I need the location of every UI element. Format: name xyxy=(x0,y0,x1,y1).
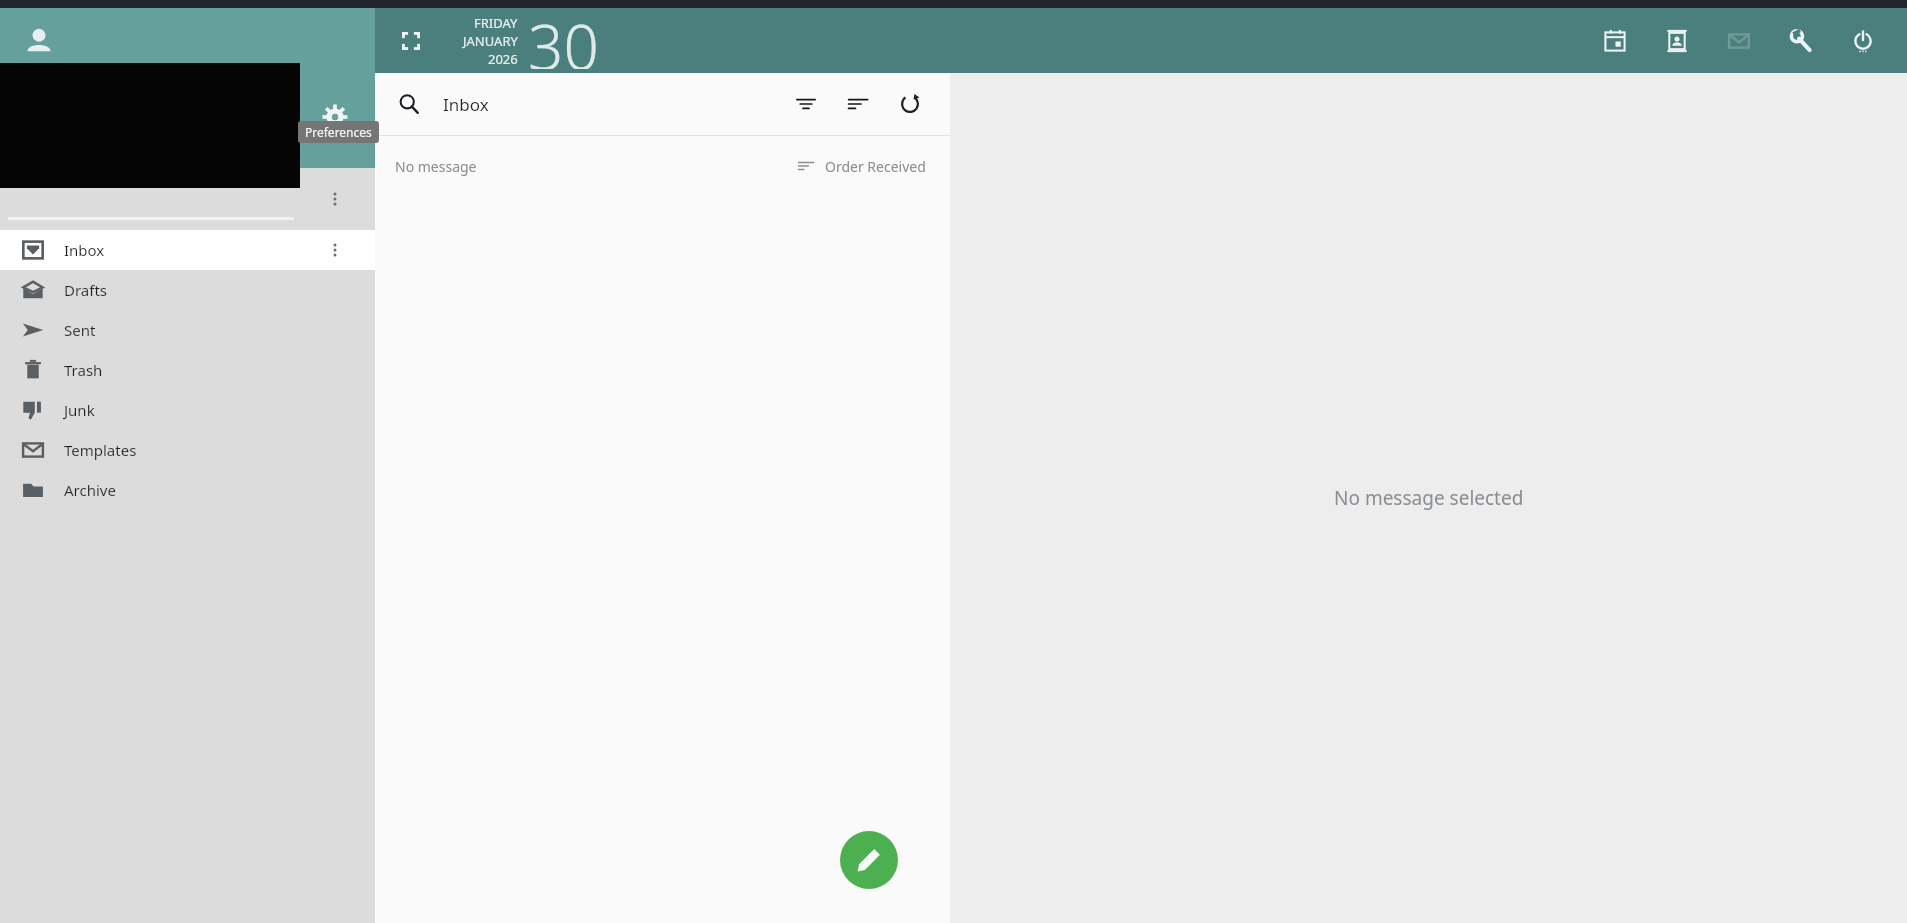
button[interactable]: Sort xyxy=(838,84,878,124)
staticText: No message selected xyxy=(1334,485,1524,511)
button[interactable]: Power xyxy=(1843,21,1883,61)
staticText: Trash xyxy=(64,360,103,380)
button[interactable]: Drafts xyxy=(0,270,375,310)
button[interactable]: Trash xyxy=(0,350,375,390)
button[interactable]: Calendar xyxy=(1595,21,1635,61)
button[interactable]: Order Received xyxy=(791,149,930,183)
button[interactable]: Fullscreen xyxy=(389,19,433,63)
button[interactable]: Compose xyxy=(840,831,898,889)
staticText: Drafts xyxy=(64,280,108,300)
button[interactable]: Junk xyxy=(0,390,375,430)
staticText: Junk xyxy=(64,400,95,420)
button[interactable]: Templates xyxy=(0,430,375,470)
staticText: Sent xyxy=(64,320,96,340)
button[interactable]: Inbox xyxy=(0,230,375,270)
button[interactable]: Contacts xyxy=(1657,21,1697,61)
button[interactable]: Folder options xyxy=(317,232,353,268)
staticText: Order Received xyxy=(825,157,926,176)
staticText: Templates xyxy=(64,440,137,460)
staticText: Inbox xyxy=(443,93,489,116)
button[interactable]: More options xyxy=(317,181,353,217)
button[interactable]: Mail xyxy=(1719,21,1759,61)
staticText: FRIDAY xyxy=(474,14,518,32)
button[interactable]: Refresh xyxy=(890,84,930,124)
staticText: JANUARY xyxy=(463,32,518,50)
button[interactable]: Tools xyxy=(1781,21,1821,61)
staticText: Inbox xyxy=(64,240,105,260)
staticText: No message xyxy=(395,157,477,176)
staticText: Preferences xyxy=(305,124,372,140)
button[interactable]: Sent xyxy=(0,310,375,350)
button[interactable]: Account xyxy=(0,8,375,73)
button[interactable]: Archive xyxy=(0,470,375,510)
button[interactable]: Search xyxy=(389,84,429,124)
staticText: 2026 xyxy=(488,50,518,68)
staticText: 30 xyxy=(528,4,599,69)
button[interactable]: Preferences xyxy=(313,95,357,139)
button[interactable]: Filter xyxy=(786,84,826,124)
staticText: Archive xyxy=(64,480,116,500)
